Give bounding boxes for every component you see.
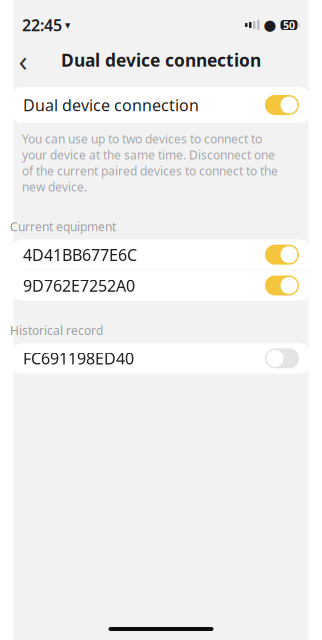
button[interactable]: 4D41BB677E6C (12, 240, 310, 270)
staticText: FC691198ED40 (23, 348, 134, 369)
staticText: ● (263, 17, 276, 33)
staticText: Current equipment (10, 219, 116, 235)
staticText: 50 (283, 18, 295, 32)
staticText: 9D762E7252A0 (23, 275, 135, 296)
staticText: Dual device connection (23, 94, 199, 116)
staticText: Historical record (10, 322, 103, 338)
button[interactable]: 9D762E7252A0 (12, 270, 310, 300)
button[interactable]: Back (6, 43, 40, 77)
staticText: Dual device connection (61, 48, 261, 71)
staticText: 22:45 (22, 14, 62, 36)
button[interactable]: FC691198ED40 (12, 343, 310, 373)
button[interactable]: Dual device connection (12, 87, 310, 123)
staticText: You can use up to two devices to connect… (22, 131, 278, 195)
staticText: ▾ (65, 19, 70, 31)
staticText: ‹ (18, 40, 27, 79)
staticText: 4D41BB677E6C (23, 244, 137, 265)
